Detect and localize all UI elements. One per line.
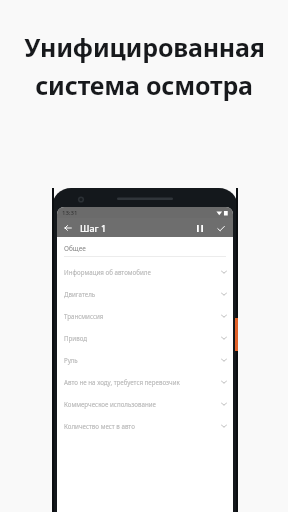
button[interactable]: Done [214, 221, 228, 235]
staticText: Авто не на ходу, требуется перевозчик [64, 378, 221, 386]
staticText: Унифицированная [24, 30, 265, 64]
staticText: Количество мест в авто [64, 422, 221, 430]
button[interactable]: Количество мест в авто [57, 415, 233, 437]
button[interactable]: Информация об автомобиле [57, 261, 233, 283]
staticText: Шаг 1 [80, 222, 107, 234]
button[interactable]: Коммерческое использование [57, 393, 233, 415]
staticText: Трансмиссия [64, 312, 221, 320]
button[interactable]: Двигатель [57, 283, 233, 305]
button[interactable]: Трансмиссия [57, 305, 233, 327]
staticText: Коммерческое использование [64, 400, 221, 408]
button[interactable]: Руль [57, 349, 233, 371]
staticText: Информация об автомобиле [64, 268, 221, 276]
button[interactable]: Pause [193, 221, 207, 235]
staticText: система осмотра [35, 68, 253, 102]
staticText: Общее [64, 244, 86, 253]
staticText: Привод [64, 334, 221, 342]
staticText: Руль [64, 356, 221, 364]
staticText: 13:31 [62, 209, 78, 217]
button[interactable]: Back [60, 220, 76, 236]
staticText: Двигатель [64, 290, 221, 298]
button[interactable]: Авто не на ходу, требуется перевозчик [57, 371, 233, 393]
button[interactable]: Привод [57, 327, 233, 349]
